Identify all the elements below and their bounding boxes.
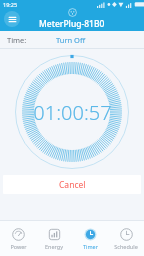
staticText: Schedule bbox=[114, 243, 138, 250]
staticText: 01:00:57 bbox=[33, 99, 112, 126]
button[interactable]: Energy bbox=[36, 226, 72, 252]
staticText: Time: bbox=[7, 35, 27, 45]
staticText: Timer bbox=[83, 243, 98, 250]
button[interactable]: Cancel bbox=[3, 175, 141, 194]
staticText: MeterPlug-81B0 bbox=[39, 18, 105, 30]
button[interactable]: Schedule bbox=[108, 226, 144, 252]
button[interactable]: Power bbox=[0, 226, 36, 252]
staticText: Power bbox=[10, 243, 27, 250]
button[interactable]: Turn Off bbox=[53, 33, 89, 47]
staticText: Cancel bbox=[59, 179, 86, 191]
button[interactable]: Timer bbox=[72, 226, 108, 252]
button[interactable]: Menu bbox=[4, 11, 20, 27]
staticText: Energy bbox=[45, 243, 63, 250]
staticText: 19:25 bbox=[3, 1, 18, 8]
staticText: Turn Off bbox=[56, 35, 86, 45]
